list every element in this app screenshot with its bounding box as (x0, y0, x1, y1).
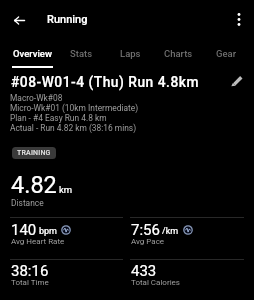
staticText: Charts (164, 48, 193, 59)
staticText: Gear (216, 48, 237, 59)
staticText: Actual - Run 4.82 km (38:16 mins) (10, 123, 137, 133)
button[interactable]: 433 (131, 259, 244, 298)
button[interactable]: Gear (202, 48, 250, 68)
button[interactable]: 7:56 (131, 218, 244, 257)
staticText: Running (47, 13, 88, 26)
button[interactable]: TRAINING (12, 147, 56, 159)
staticText: Total Calories (131, 278, 180, 287)
staticText: Total Time (11, 278, 49, 287)
button[interactable]: More options (226, 6, 252, 32)
button[interactable]: Laps (106, 48, 154, 68)
staticText: km (59, 184, 73, 195)
button[interactable]: 38:16 (11, 259, 123, 298)
button[interactable]: Stats (57, 48, 106, 68)
staticText: Laps (120, 48, 141, 59)
staticText: Stats (70, 48, 93, 59)
button[interactable]: Back (6, 7, 32, 33)
staticText: Distance (11, 198, 44, 208)
staticText: Macro-Wk#08 (10, 93, 63, 103)
button[interactable]: 140 (11, 218, 123, 257)
staticText: /km (162, 226, 179, 237)
staticText: Overview (13, 48, 53, 59)
staticText: Avg Heart Rate (11, 237, 65, 246)
button[interactable]: Overview (8, 48, 57, 68)
staticText: Avg Pace (131, 237, 165, 246)
staticText: 140 (11, 221, 37, 239)
button[interactable]: Edit (224, 67, 249, 92)
button[interactable]: Charts (154, 48, 202, 68)
staticText: #08-W01-4 (Thu) Run 4.8km (11, 74, 199, 90)
staticText: 433 (131, 262, 157, 280)
staticText: 4.82 (11, 171, 57, 199)
staticText: TRAINING (17, 149, 51, 157)
staticText: Plan - #4 Easy Run 4.8 km (10, 113, 107, 123)
staticText: 38:16 (11, 262, 49, 280)
staticText: Micro-Wk#01 (10km Intermediate) (10, 103, 139, 113)
staticText: 7:56 (131, 221, 160, 239)
staticText: bpm (39, 226, 57, 237)
